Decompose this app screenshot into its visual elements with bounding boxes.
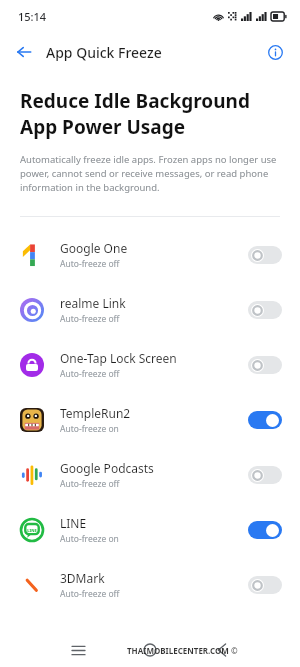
button[interactable]: Auto-freeze off bbox=[248, 246, 282, 264]
staticText: Reduce Idle Background App Power Usage bbox=[20, 88, 250, 139]
button[interactable]: Back bbox=[207, 635, 237, 665]
button[interactable]: Auto-freeze off bbox=[248, 301, 282, 319]
button[interactable]: Home bbox=[135, 635, 165, 665]
staticText: Auto-freeze off bbox=[60, 588, 120, 600]
staticText: Google Podcasts bbox=[60, 460, 154, 476]
button[interactable]: Back bbox=[8, 36, 40, 68]
staticText: Auto-freeze off bbox=[60, 478, 120, 490]
staticText: App Quick Freeze bbox=[46, 43, 162, 62]
button[interactable]: One-Tap Lock Screen bbox=[0, 337, 300, 392]
staticText: Auto-freeze off bbox=[60, 258, 120, 270]
button[interactable]: 3DMark bbox=[0, 557, 300, 612]
staticText: 15:14 bbox=[18, 9, 47, 24]
staticText: Auto-freeze off bbox=[60, 313, 120, 325]
button[interactable]: Auto-freeze on bbox=[248, 521, 282, 539]
button[interactable]: LINE bbox=[0, 502, 300, 557]
staticText: Auto-freeze off bbox=[60, 368, 120, 380]
button[interactable]: Auto-freeze off bbox=[248, 356, 282, 374]
staticText: realme Link bbox=[60, 295, 126, 311]
staticText: Auto-freeze on bbox=[60, 533, 119, 545]
button[interactable]: Info bbox=[260, 37, 290, 67]
button[interactable]: TempleRun2 bbox=[0, 392, 300, 447]
staticText: LINE bbox=[27, 528, 37, 533]
button[interactable]: realme Link bbox=[0, 282, 300, 337]
staticText: THAIMOBILECENTER.COM © bbox=[127, 645, 238, 656]
button[interactable]: Auto-freeze off bbox=[248, 576, 282, 594]
button[interactable]: Google Podcasts bbox=[0, 447, 300, 502]
staticText: Google One bbox=[60, 240, 128, 256]
staticText: Auto-freeze on bbox=[60, 423, 119, 435]
button[interactable]: Google One bbox=[0, 227, 300, 282]
staticText: LINE bbox=[60, 515, 87, 531]
staticText: 3DMark bbox=[60, 570, 105, 586]
button[interactable]: Recent apps bbox=[63, 635, 93, 665]
button[interactable]: Auto-freeze on bbox=[248, 411, 282, 429]
staticText: One-Tap Lock Screen bbox=[60, 350, 177, 366]
button[interactable]: Auto-freeze off bbox=[248, 466, 282, 484]
staticText: TempleRun2 bbox=[60, 405, 131, 421]
staticText: Automatically freeze idle apps. Frozen a… bbox=[20, 153, 280, 194]
